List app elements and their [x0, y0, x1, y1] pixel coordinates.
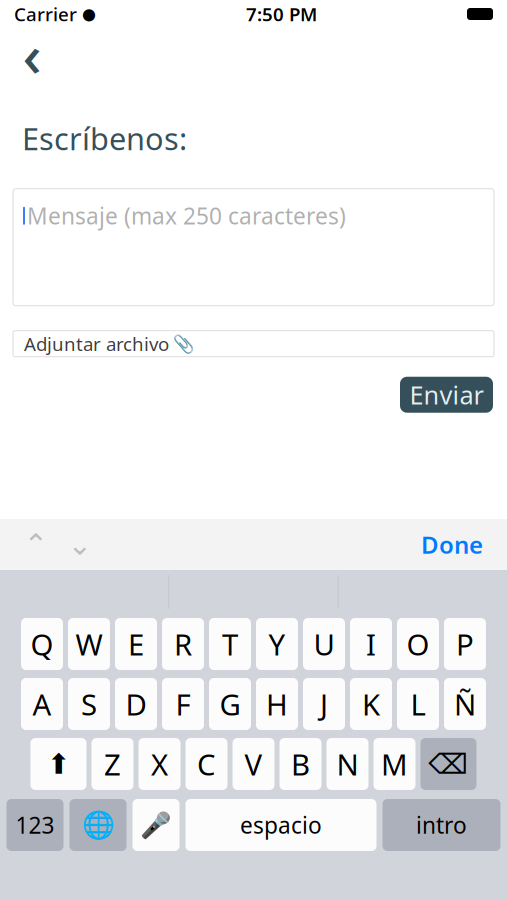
button[interactable]: W: [68, 618, 110, 670]
staticText: Z: [104, 744, 121, 783]
button[interactable]: G: [209, 678, 251, 730]
button[interactable]: Previous field: [14, 522, 58, 566]
button[interactable]: C: [185, 738, 227, 790]
staticText: N: [336, 744, 358, 783]
button[interactable]: N: [326, 738, 368, 790]
button[interactable]: J: [303, 678, 345, 730]
button[interactable]: intro: [382, 799, 500, 851]
staticText: U: [313, 624, 334, 663]
button[interactable]: K: [350, 678, 392, 730]
button[interactable]: O: [397, 618, 439, 670]
staticText: B: [291, 744, 310, 783]
button[interactable]: P: [444, 618, 486, 670]
button[interactable]: U: [303, 618, 345, 670]
staticText: K: [362, 684, 380, 723]
staticText: 📎: [173, 334, 195, 354]
button[interactable]: I: [350, 618, 392, 670]
staticText: M: [381, 744, 408, 783]
button[interactable]: Back: [8, 30, 56, 78]
staticText: Escríbenos:: [22, 118, 187, 159]
button[interactable]: Delete: [420, 738, 476, 790]
staticText: L: [410, 684, 425, 723]
staticText: V: [244, 744, 262, 783]
button[interactable]: H: [256, 678, 298, 730]
staticText: ‹: [22, 15, 41, 93]
staticText: R: [174, 624, 192, 663]
button[interactable]: B: [279, 738, 321, 790]
staticText: 🌐: [81, 810, 114, 840]
button[interactable]: A: [21, 678, 63, 730]
button[interactable]: Dictation: [132, 799, 179, 851]
button[interactable]: Done: [411, 522, 493, 566]
staticText: Done: [421, 529, 483, 560]
staticText: Ñ: [454, 684, 476, 723]
button[interactable]: E: [115, 618, 157, 670]
staticText: D: [125, 684, 146, 723]
staticText: 🎤: [140, 810, 172, 839]
staticText: F: [175, 684, 190, 723]
button[interactable]: F: [162, 678, 204, 730]
button[interactable]: 123: [6, 799, 63, 851]
staticText: Y: [268, 624, 285, 663]
staticText: T: [222, 624, 238, 663]
button[interactable]: Y: [256, 618, 298, 670]
staticText: ⌃: [23, 528, 48, 561]
staticText: S: [81, 684, 97, 723]
staticText: E: [128, 624, 144, 663]
button[interactable]: Ñ: [444, 678, 486, 730]
button[interactable]: Next field: [58, 522, 102, 566]
staticText: A: [32, 684, 51, 723]
staticText: I: [366, 624, 376, 663]
staticText: H: [266, 684, 288, 723]
staticText: ⌄: [67, 528, 92, 561]
button[interactable]: Q: [21, 618, 63, 670]
button[interactable]: R: [162, 618, 204, 670]
staticText: 7:50 PM: [246, 2, 317, 26]
button[interactable]: Z: [91, 738, 133, 790]
button[interactable]: Shift: [30, 738, 86, 790]
staticText: ⬆: [47, 748, 70, 780]
staticText: Enviar: [409, 378, 483, 411]
button[interactable]: V: [232, 738, 274, 790]
staticText: W: [75, 624, 102, 663]
button[interactable]: X: [138, 738, 180, 790]
staticText: Adjuntar archivo: [24, 331, 169, 356]
button[interactable]: Enviar: [400, 377, 493, 413]
button[interactable]: L: [397, 678, 439, 730]
button[interactable]: Next keyboard: [69, 799, 126, 851]
staticText: ●: [82, 5, 96, 23]
button[interactable]: T: [209, 618, 251, 670]
button[interactable]: D: [115, 678, 157, 730]
staticText: C: [197, 744, 216, 783]
staticText: X: [151, 744, 168, 783]
staticText: espacio: [240, 810, 322, 840]
staticText: P: [456, 624, 474, 663]
staticText: G: [219, 684, 240, 723]
staticText: Q: [30, 624, 53, 663]
staticText: 123: [15, 810, 54, 840]
button[interactable]: espacio: [185, 799, 376, 851]
staticText: J: [320, 684, 328, 723]
button[interactable]: S: [68, 678, 110, 730]
button[interactable]: M: [373, 738, 415, 790]
button[interactable]: Adjuntar archivo: [13, 331, 494, 357]
staticText: Mensaje (max 250 caracteres): [27, 201, 346, 231]
staticText: Carrier: [14, 2, 77, 26]
staticText: O: [406, 624, 429, 663]
staticText: ⌫: [428, 748, 468, 780]
staticText: intro: [416, 810, 467, 840]
